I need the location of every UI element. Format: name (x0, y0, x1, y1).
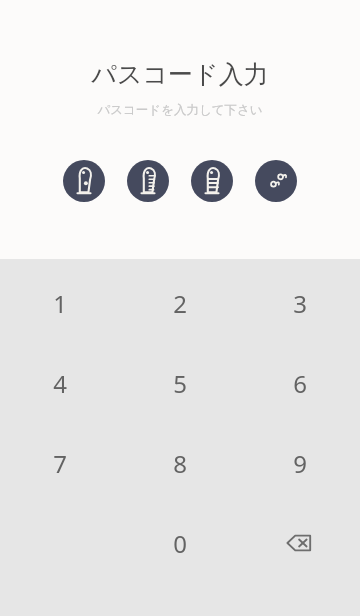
button[interactable]: 9 (240, 423, 360, 503)
button[interactable]: 6 (240, 343, 360, 423)
staticText: 2 (173, 287, 187, 320)
button[interactable]: Entered passcode character 2 (127, 160, 169, 202)
staticText: 6 (293, 367, 307, 400)
button[interactable]: 8 (120, 423, 240, 503)
staticText: 7 (53, 447, 67, 480)
button[interactable]: Entered passcode character 4 (255, 160, 297, 202)
button[interactable]: 5 (120, 343, 240, 423)
staticText: 0 (173, 527, 187, 560)
button[interactable]: 3 (240, 263, 360, 343)
staticText: パスコード入力 (91, 59, 269, 90)
staticText: 5 (173, 367, 187, 400)
button[interactable]: Entered passcode character 1 (63, 160, 105, 202)
staticText: 8 (173, 447, 187, 480)
staticText: 9 (293, 447, 307, 480)
staticText: 4 (53, 367, 67, 400)
button[interactable]: Backspace (240, 503, 360, 583)
staticText: 3 (293, 287, 307, 320)
button[interactable]: 0 (120, 503, 240, 583)
staticText: パスコードを入力して下さい (97, 102, 263, 118)
staticText: 1 (53, 287, 67, 320)
button[interactable]: 7 (0, 423, 120, 503)
button[interactable]: 4 (0, 343, 120, 423)
button[interactable]: 1 (0, 263, 120, 343)
button[interactable]: Entered passcode character 3 (191, 160, 233, 202)
button[interactable]: 2 (120, 263, 240, 343)
